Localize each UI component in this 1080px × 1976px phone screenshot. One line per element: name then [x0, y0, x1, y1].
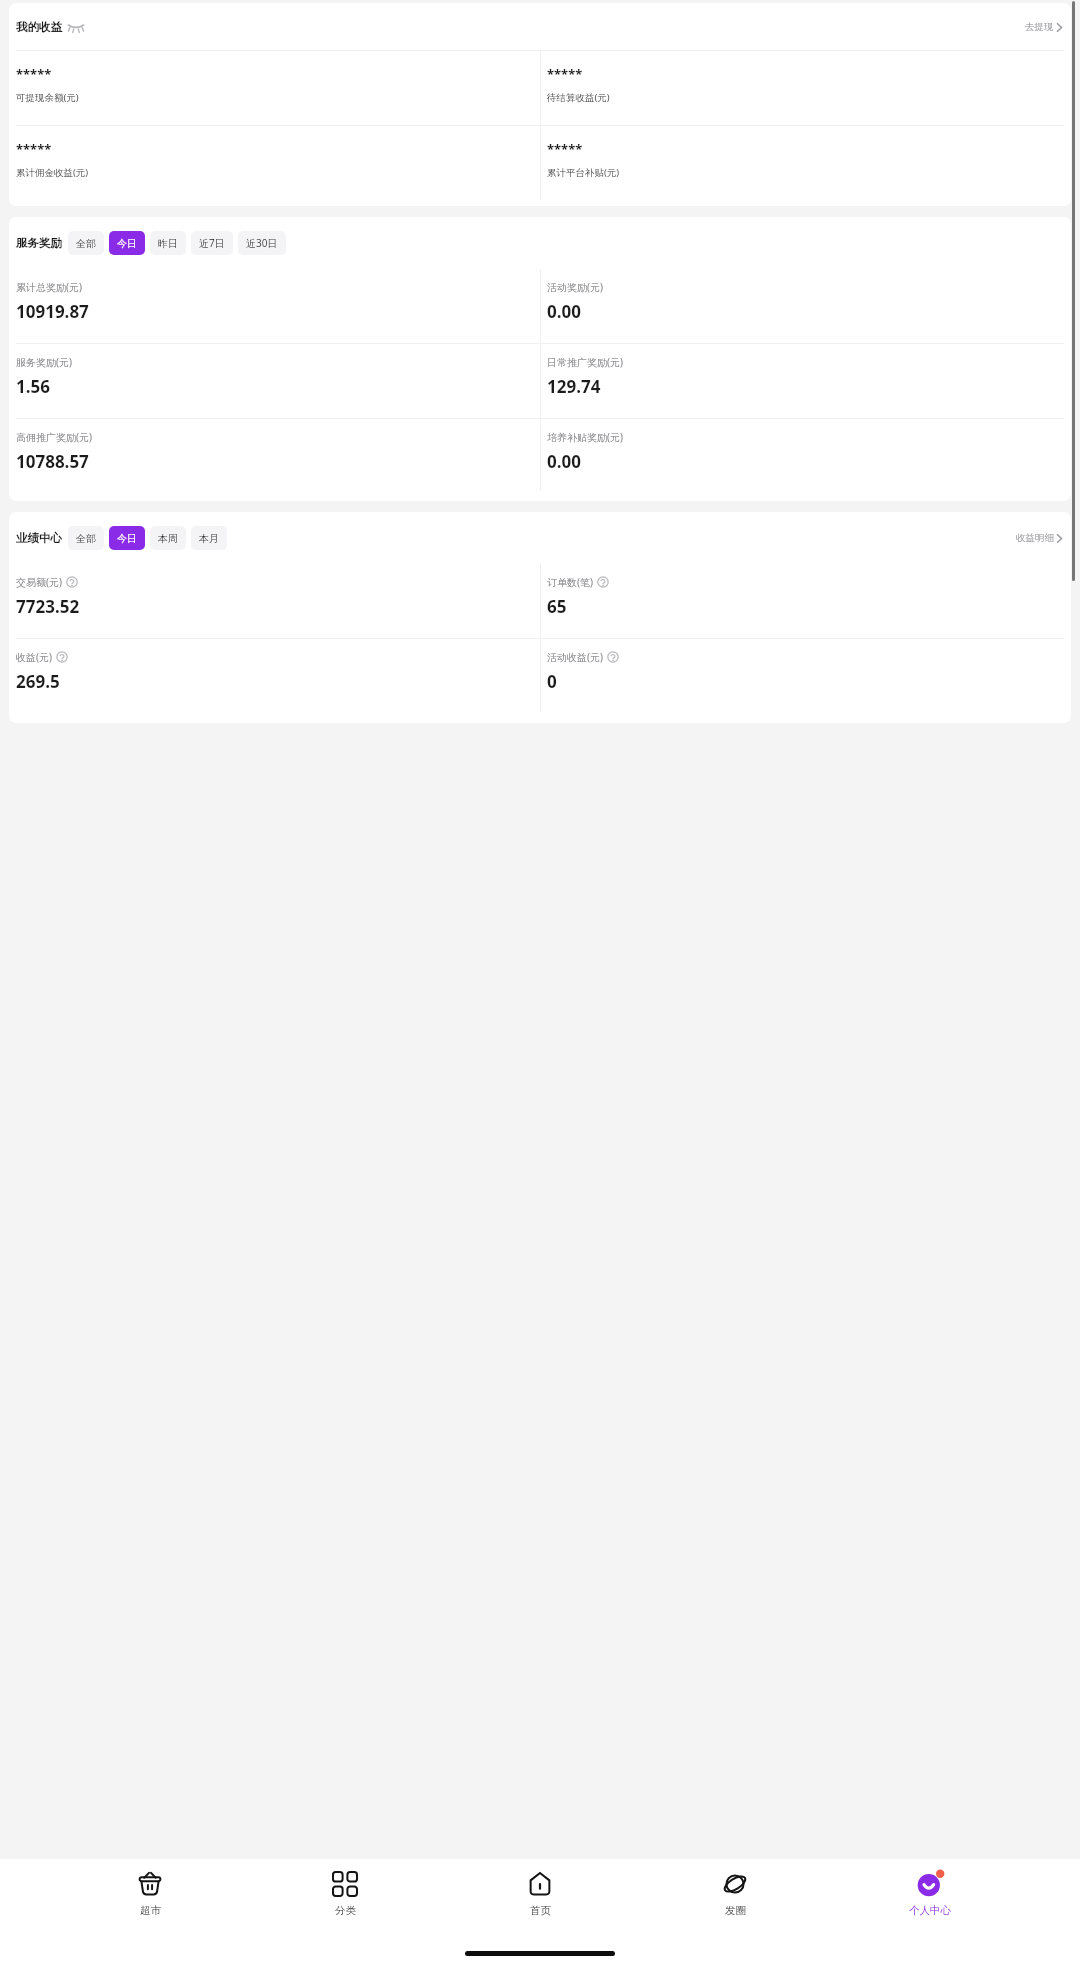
staticText: 高佣推广奖励(元) — [16, 430, 92, 444]
staticText: 10919.87 — [16, 300, 89, 323]
button[interactable]: ***** — [9, 51, 540, 125]
staticText: 去提现 — [1025, 21, 1054, 33]
staticText: 本周 — [158, 532, 178, 545]
button[interactable]: 培养补贴奖励(元) — [540, 419, 1071, 493]
staticText: 0.00 — [547, 300, 581, 323]
button[interactable]: 发圈 — [690, 1859, 780, 1931]
staticText: 累计佣金收益(元) — [16, 166, 89, 179]
staticText: 近30日 — [246, 236, 278, 250]
staticText: 服务奖励 — [16, 236, 62, 250]
button[interactable]: 说明 — [597, 576, 609, 588]
staticText: ***** — [547, 140, 583, 158]
button[interactable]: 隐藏金额 — [67, 18, 85, 36]
staticText: 129.74 — [547, 375, 601, 398]
staticText: 65 — [547, 595, 567, 618]
staticText: 首页 — [530, 1904, 551, 1917]
button[interactable]: 去提现 — [1023, 17, 1064, 37]
staticText: ***** — [547, 65, 583, 83]
button[interactable]: ***** — [540, 126, 1071, 200]
button[interactable]: 全部 — [68, 231, 104, 255]
staticText: 活动奖励(元) — [547, 280, 603, 294]
button[interactable]: 分类 — [300, 1859, 390, 1931]
button[interactable]: 全部 — [68, 526, 104, 550]
staticText: 1.56 — [16, 375, 50, 398]
button[interactable]: 超市 — [105, 1859, 195, 1931]
staticText: 累计总奖励(元) — [16, 280, 82, 294]
staticText: 今日 — [117, 237, 137, 250]
staticText: 0.00 — [547, 450, 581, 473]
staticText: 超市 — [140, 1904, 161, 1917]
button[interactable]: 说明 — [607, 651, 619, 663]
staticText: 发圈 — [725, 1904, 746, 1917]
button[interactable]: 活动收益(元) — [540, 639, 1071, 713]
button[interactable]: 收益(元) — [9, 639, 540, 713]
button[interactable]: 服务奖励(元) — [9, 344, 540, 418]
button[interactable]: ***** — [540, 51, 1071, 125]
staticText: 收益(元) — [16, 650, 52, 664]
button[interactable]: 高佣推广奖励(元) — [9, 419, 540, 493]
button[interactable]: 昨日 — [150, 231, 186, 255]
staticText: 交易额(元) — [16, 575, 62, 589]
button[interactable]: 日常推广奖励(元) — [540, 344, 1071, 418]
staticText: 累计平台补贴(元) — [547, 166, 620, 179]
staticText: 个人中心 — [909, 1904, 951, 1917]
staticText: ***** — [16, 65, 52, 83]
button[interactable]: 近7日 — [191, 231, 233, 255]
staticText: 269.5 — [16, 670, 60, 693]
staticText: 本月 — [199, 532, 219, 545]
staticText: 分类 — [335, 1904, 356, 1917]
staticText: 订单数(笔) — [547, 575, 593, 589]
staticText: 可提现余额(元) — [16, 91, 79, 104]
button[interactable]: 近30日 — [238, 231, 286, 255]
staticText: 我的收益 — [16, 20, 62, 34]
staticText: 培养补贴奖励(元) — [547, 430, 623, 444]
button[interactable]: 说明 — [66, 576, 78, 588]
staticText: 今日 — [117, 532, 137, 545]
staticText: ***** — [16, 140, 52, 158]
staticText: 0 — [547, 670, 557, 693]
button[interactable]: 本月 — [191, 526, 227, 550]
staticText: 10788.57 — [16, 450, 89, 473]
staticText: 待结算收益(元) — [547, 91, 610, 104]
button[interactable]: 今日 — [109, 231, 145, 255]
button[interactable]: 累计总奖励(元) — [9, 269, 540, 343]
staticText: 全部 — [76, 532, 96, 545]
staticText: 昨日 — [158, 237, 178, 250]
button[interactable]: 个人中心 — [885, 1859, 975, 1931]
button[interactable]: ***** — [9, 126, 540, 200]
staticText: 日常推广奖励(元) — [547, 355, 623, 369]
button[interactable]: 订单数(笔) — [540, 564, 1071, 638]
staticText: 活动收益(元) — [547, 650, 603, 664]
staticText: 业绩中心 — [16, 531, 62, 545]
button[interactable]: 活动奖励(元) — [540, 269, 1071, 343]
button[interactable]: 本周 — [150, 526, 186, 550]
button[interactable]: 交易额(元) — [9, 564, 540, 638]
button[interactable]: 今日 — [109, 526, 145, 550]
staticText: 全部 — [76, 237, 96, 250]
staticText: 近7日 — [199, 236, 225, 250]
staticText: 服务奖励(元) — [16, 355, 72, 369]
button[interactable]: 说明 — [56, 651, 68, 663]
staticText: 收益明细 — [1016, 532, 1054, 544]
staticText: 7723.52 — [16, 595, 80, 618]
button[interactable]: 首页 — [495, 1859, 585, 1931]
button[interactable]: 收益明细 — [1014, 528, 1064, 548]
